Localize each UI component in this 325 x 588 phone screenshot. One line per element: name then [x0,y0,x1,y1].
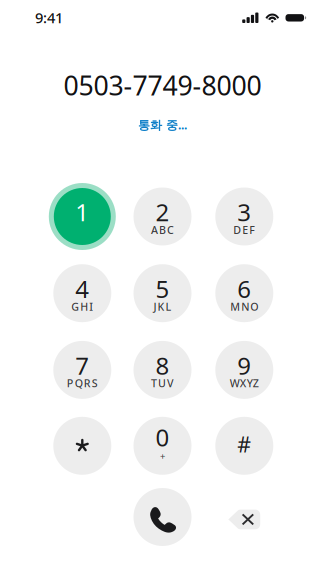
button[interactable]: Delete [215,497,273,543]
staticText: 1 [75,196,89,228]
staticText: # [237,430,251,458]
staticText: J K L [153,299,171,314]
staticText: 통화 중... [138,117,187,133]
staticText: 0 [155,421,169,453]
staticText: 9:41 [35,8,63,27]
button[interactable]: 8 [126,334,198,406]
button[interactable]: 9 [208,334,280,406]
staticText: 2 [155,196,169,228]
staticText: P Q R S [67,376,98,390]
button[interactable]: 1 [46,180,118,252]
button[interactable]: 2 [126,180,198,252]
staticText: M N O [230,299,258,314]
staticText: 4 [75,273,89,305]
staticText: A B C [151,223,174,237]
staticText: 5 [155,273,169,305]
staticText: 3 [237,196,251,228]
button[interactable]: 0 [126,410,198,482]
button[interactable]: 5 [126,257,198,329]
button[interactable]: Call [126,481,198,553]
staticText: WXYZ [230,376,259,390]
staticText: G H I [71,299,93,314]
button[interactable]: 4 [46,257,118,329]
staticText: T U V [151,376,174,390]
button[interactable]: 3 [208,180,280,252]
staticText: 9 [237,349,251,381]
button[interactable]: # [208,410,280,482]
staticText: + [160,450,165,462]
button[interactable]: Star [46,410,118,482]
staticText: 6 [237,273,251,305]
staticText: D E F [233,223,255,237]
staticText: 7 [75,349,89,381]
staticText: 0503-7749-8000 [63,67,261,103]
staticText: 8 [155,349,169,381]
button[interactable]: 7 [46,334,118,406]
button[interactable]: 6 [208,257,280,329]
